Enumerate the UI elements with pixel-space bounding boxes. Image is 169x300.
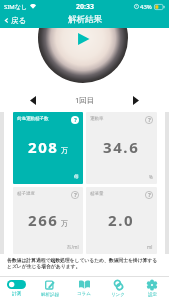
staticText: 266: [28, 210, 59, 230]
button[interactable]: リンク: [101, 277, 135, 300]
button[interactable]: 前の計測: [26, 93, 40, 107]
button[interactable]: 精子濃度: [13, 187, 83, 254]
staticText: ?: [74, 191, 77, 199]
staticText: コラム: [77, 291, 91, 297]
staticText: ?: [74, 116, 77, 124]
staticText: 20:33: [76, 2, 94, 12]
staticText: リンク: [111, 292, 125, 298]
staticText: %: [149, 174, 153, 180]
staticText: 設定: [148, 292, 157, 298]
staticText: 2.0: [108, 210, 135, 230]
button[interactable]: ヘルプ: [71, 116, 79, 124]
staticText: 208: [28, 137, 59, 157]
button[interactable]: ヘルプ: [145, 191, 153, 199]
staticText: 個: [74, 174, 79, 180]
button[interactable]: 前進運動精子数: [13, 112, 83, 184]
staticText: 1回目: [75, 95, 95, 105]
staticText: 前進運動精子数: [17, 116, 49, 122]
staticText: 万: [61, 146, 68, 155]
button[interactable]: コラム: [67, 277, 101, 300]
staticText: ?: [148, 191, 151, 199]
button[interactable]: 次の計測: [129, 93, 143, 107]
staticText: 万: [61, 219, 68, 228]
staticText: 精子濃度: [17, 191, 35, 197]
button[interactable]: ヘルプ: [145, 116, 153, 124]
staticText: ?: [148, 116, 151, 124]
staticText: 解析結果: [68, 14, 102, 25]
staticText: 精液量: [90, 191, 104, 197]
staticText: 戻る: [11, 16, 27, 25]
button[interactable]: 計測: [0, 277, 33, 300]
staticText: 百/ml: [67, 244, 79, 250]
button[interactable]: 再生: [77, 33, 90, 45]
button[interactable]: ヘルプ: [71, 191, 79, 199]
staticText: 解析記録: [41, 292, 59, 298]
staticText: SIMなし: [4, 3, 28, 11]
staticText: 各数値は計算過程で端数処理をしているため、数値同士を掛け算する とズレが生じる場…: [7, 257, 158, 270]
staticText: ml: [147, 244, 153, 250]
staticText: 運動率: [90, 116, 104, 122]
button[interactable]: 設定: [135, 277, 169, 300]
staticText: 43%: [140, 3, 152, 11]
staticText: 34.6: [103, 137, 140, 157]
button[interactable]: 戻る: [3, 13, 27, 28]
button[interactable]: 解析記録: [33, 277, 67, 300]
button[interactable]: 精液量: [86, 187, 157, 254]
staticText: 計測: [12, 291, 21, 297]
button[interactable]: 運動率: [86, 112, 157, 184]
